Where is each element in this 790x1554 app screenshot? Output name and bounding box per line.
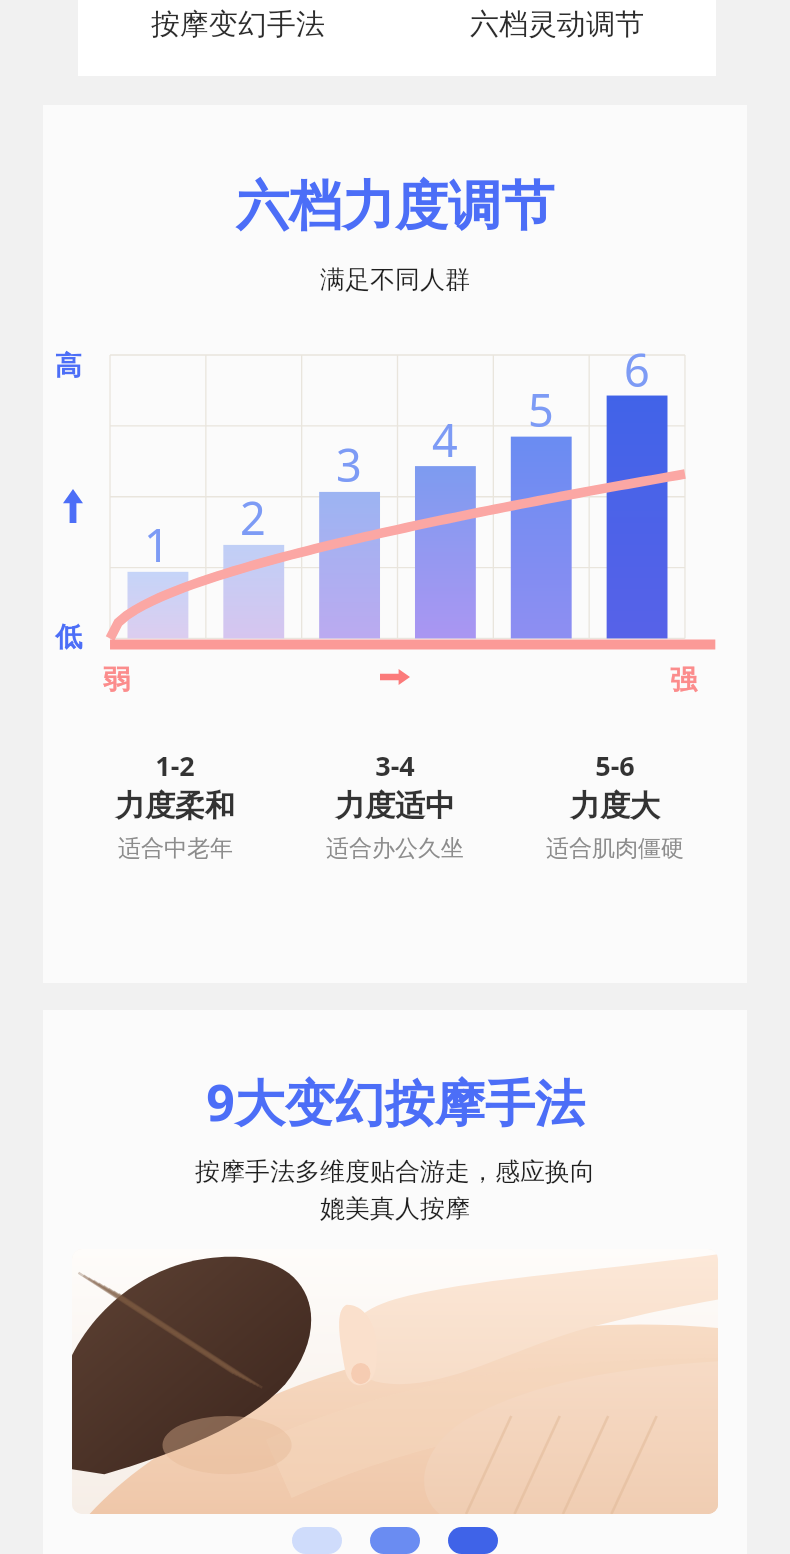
staticText: 按摩变幻手法 <box>151 6 325 43</box>
staticText: 高 <box>55 349 82 383</box>
staticText: 2 <box>240 487 266 548</box>
staticText: 3-4 <box>375 747 415 784</box>
staticText: 低 <box>55 620 82 654</box>
button[interactable]: 1-2 <box>65 747 285 863</box>
staticText: 5-6 <box>595 747 635 784</box>
button[interactable]: 5-6 <box>505 747 725 863</box>
button[interactable]: Massage mode <box>292 1527 342 1554</box>
staticText: 强 <box>670 663 697 697</box>
button[interactable]: Massage mode <box>448 1527 498 1554</box>
staticText: 力度适中 <box>335 787 455 825</box>
button[interactable]: Massage mode <box>370 1527 420 1554</box>
staticText: 适合办公久坐 <box>326 834 464 863</box>
button[interactable]: Massage demonstration photo <box>72 1249 718 1514</box>
staticText: 4 <box>432 409 458 470</box>
staticText: 按摩手法多维度贴合游走，感应换向 媲美真人按摩 <box>195 1156 595 1224</box>
button[interactable]: 按摩变幻手法 <box>78 0 716 76</box>
staticText: 3 <box>336 434 362 495</box>
staticText: 弱 <box>103 663 130 697</box>
staticText: 力度大 <box>570 787 660 825</box>
staticText: 适合中老年 <box>118 834 233 863</box>
staticText: 1-2 <box>155 747 195 784</box>
staticText: 力度柔和 <box>115 787 235 825</box>
staticText: 满足不同人群 <box>320 264 470 295</box>
staticText: 5 <box>528 379 554 440</box>
button[interactable]: 3-4 <box>285 747 505 863</box>
staticText: 六档灵动调节 <box>470 6 644 43</box>
staticText: 9大变幻按摩手法 <box>206 1068 585 1136</box>
staticText: 6 <box>624 339 650 400</box>
staticText: 六档力度调节 <box>236 173 554 240</box>
staticText: 1 <box>144 514 170 575</box>
staticText: 适合肌肉僵硬 <box>546 834 684 863</box>
